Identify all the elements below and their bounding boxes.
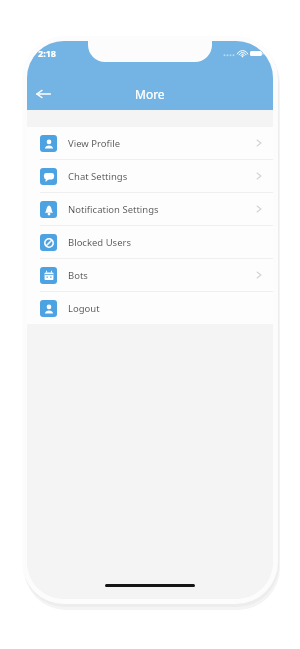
button[interactable]: Notification Settings <box>27 193 273 225</box>
button[interactable]: View Profile <box>27 127 273 159</box>
staticText: Bots <box>68 269 88 282</box>
button[interactable]: Back <box>27 77 60 110</box>
staticText: Logout <box>68 302 100 315</box>
button[interactable]: Chat Settings <box>27 160 273 192</box>
staticText: Blocked Users <box>68 236 132 249</box>
staticText: Chat Settings <box>68 170 128 183</box>
button[interactable]: Logout <box>27 292 273 324</box>
staticText: Notification Settings <box>68 203 159 216</box>
staticText: More <box>135 86 165 102</box>
button[interactable]: Blocked Users <box>27 226 273 258</box>
staticText: View Profile <box>68 137 121 150</box>
button[interactable]: Bots <box>27 259 273 291</box>
staticText: 2:18 <box>38 47 56 59</box>
